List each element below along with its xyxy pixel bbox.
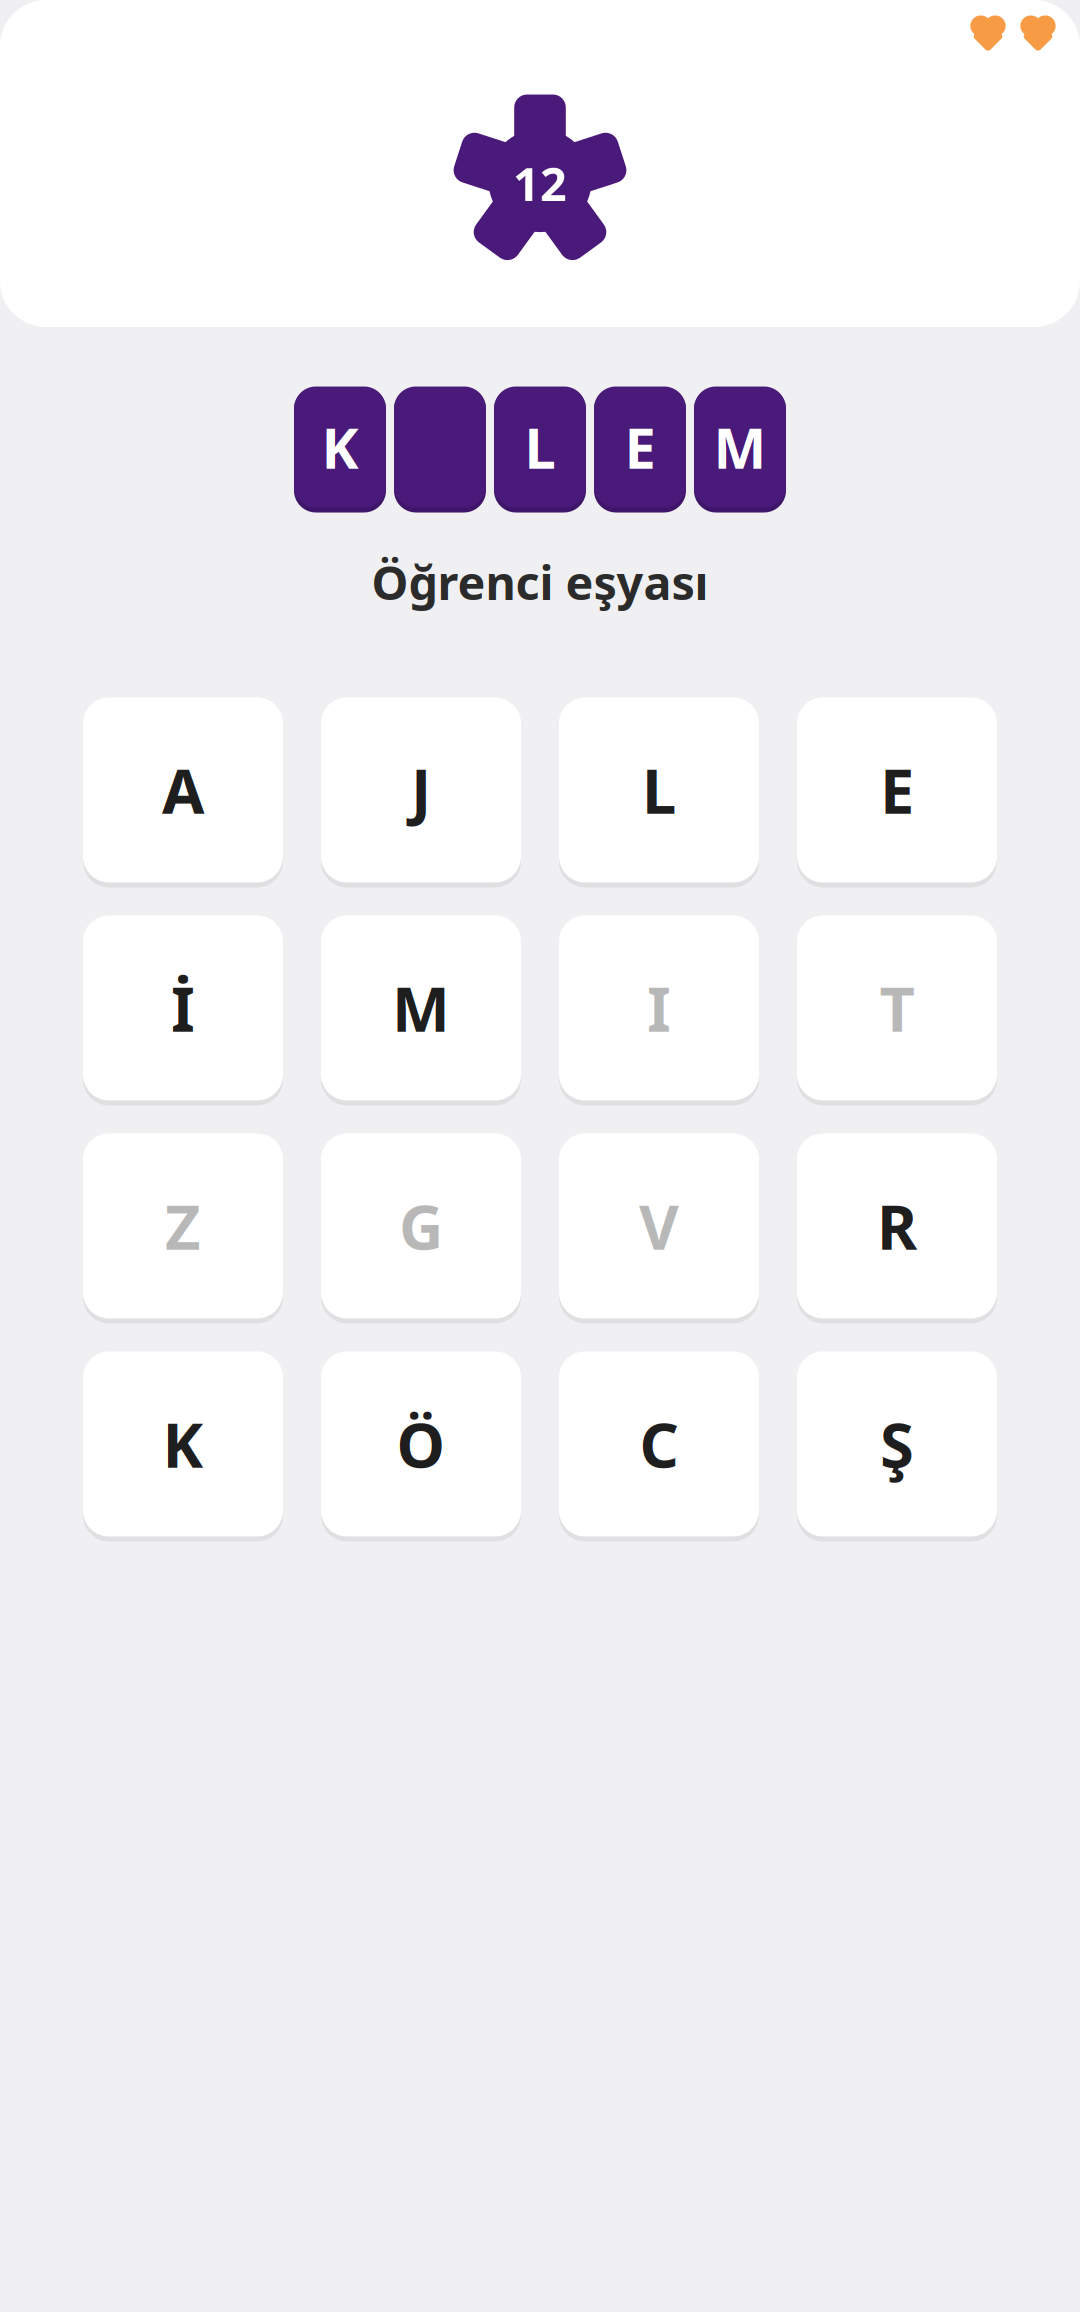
- button[interactable]: C: [559, 1349, 759, 1539]
- button[interactable]: Ö: [321, 1349, 521, 1539]
- button[interactable]: Letter E: [594, 383, 686, 511]
- button[interactable]: L: [559, 695, 759, 885]
- button[interactable]: Letter L: [494, 383, 586, 511]
- staticText: L: [524, 410, 555, 484]
- staticText: E: [624, 410, 655, 484]
- button[interactable]: Ş: [797, 1349, 997, 1539]
- staticText: M: [392, 967, 450, 1049]
- button[interactable]: V: [559, 1131, 759, 1321]
- staticText: K: [162, 1403, 203, 1485]
- button[interactable]: Letter M: [694, 383, 786, 511]
- button[interactable]: E: [797, 695, 997, 885]
- staticText: İ: [171, 967, 195, 1049]
- button[interactable]: G: [321, 1131, 521, 1321]
- staticText: L: [642, 749, 676, 831]
- staticText: K: [321, 410, 358, 484]
- staticText: I: [647, 967, 671, 1049]
- button[interactable]: K: [83, 1349, 283, 1539]
- button[interactable]: J: [321, 695, 521, 885]
- button[interactable]: T: [797, 913, 997, 1103]
- button[interactable]: Empty letter slot: [394, 383, 486, 511]
- staticText: 12: [513, 152, 567, 214]
- button[interactable]: A: [83, 695, 283, 885]
- staticText: E: [880, 749, 914, 831]
- button[interactable]: Z: [83, 1131, 283, 1321]
- staticText: Öğrenci eşyası: [371, 551, 708, 613]
- button[interactable]: I: [559, 913, 759, 1103]
- button[interactable]: Letter K: [294, 383, 386, 511]
- button[interactable]: R: [797, 1131, 997, 1321]
- button[interactable]: İ: [83, 913, 283, 1103]
- staticText: J: [411, 749, 431, 831]
- button[interactable]: M: [321, 913, 521, 1103]
- staticText: R: [877, 1185, 917, 1267]
- staticText: C: [639, 1403, 678, 1485]
- staticText: A: [162, 749, 204, 831]
- staticText: Ö: [396, 1403, 445, 1485]
- staticText: T: [879, 967, 914, 1049]
- staticText: G: [399, 1185, 443, 1267]
- staticText: V: [639, 1185, 679, 1267]
- staticText: Ş: [880, 1403, 914, 1485]
- staticText: M: [713, 410, 766, 484]
- staticText: Z: [165, 1185, 201, 1267]
